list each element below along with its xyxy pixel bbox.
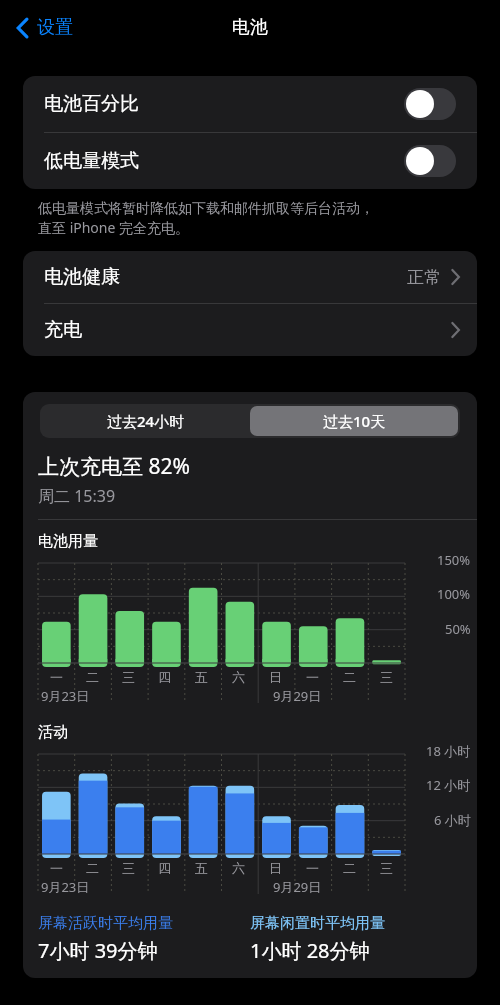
staticText: 电池健康: [44, 265, 120, 289]
staticText: 三: [122, 669, 135, 685]
staticText: 电池用量: [38, 532, 98, 551]
staticText: 五: [195, 669, 208, 685]
staticText: 7小时 39分钟: [38, 937, 158, 964]
staticText: 二: [343, 669, 356, 685]
staticText: 过去24小时: [107, 411, 185, 431]
staticText: 1小时 28分钟: [250, 937, 370, 964]
staticText: 一: [306, 669, 319, 685]
staticText: 一: [50, 669, 63, 685]
staticText: 日: [269, 860, 282, 876]
staticText: 周二 15:39: [38, 485, 116, 507]
staticText: 活动: [38, 723, 68, 742]
staticText: 9月23日: [41, 878, 90, 896]
staticText: 上次充电至 82%: [38, 452, 190, 481]
staticText: 四: [158, 669, 171, 685]
staticText: 18 小时: [426, 742, 471, 760]
staticText: 150%: [437, 551, 471, 569]
button[interactable]: 低电量模式: [23, 133, 477, 189]
staticText: 屏幕闲置时平均用量: [250, 914, 385, 933]
staticText: 五: [195, 860, 208, 876]
button[interactable]: 过去10天: [250, 406, 458, 436]
staticText: 一: [306, 860, 319, 876]
staticText: 三: [122, 860, 135, 876]
staticText: 电池: [232, 16, 268, 39]
staticText: 50%: [445, 620, 471, 638]
staticText: 电池百分比: [44, 92, 404, 116]
staticText: 六: [232, 860, 245, 876]
staticText: 直至 iPhone 完全充电。: [38, 218, 190, 237]
staticText: 12 小时: [426, 776, 471, 794]
staticText: 低电量模式: [44, 149, 404, 173]
staticText: 设置: [37, 16, 73, 39]
staticText: 一: [50, 860, 63, 876]
staticText: 过去10天: [323, 411, 386, 431]
button[interactable]: 电池百分比: [404, 88, 456, 120]
staticText: 三: [380, 669, 393, 685]
staticText: 100%: [437, 585, 471, 603]
button[interactable]: 低电量模式: [404, 145, 456, 177]
staticText: 9月29日: [273, 878, 322, 896]
staticText: 9月23日: [41, 687, 90, 705]
staticText: 正常: [407, 267, 441, 288]
staticText: 二: [86, 669, 99, 685]
button[interactable]: 电池健康: [23, 251, 477, 303]
staticText: 9月29日: [273, 687, 322, 705]
button[interactable]: 电池百分比: [23, 76, 477, 132]
button[interactable]: 过去24小时: [42, 406, 250, 436]
staticText: 三: [380, 860, 393, 876]
staticText: 六: [232, 669, 245, 685]
staticText: 屏幕活跃时平均用量: [38, 914, 173, 933]
staticText: 充电: [44, 318, 82, 342]
staticText: 二: [343, 860, 356, 876]
staticText: 日: [269, 669, 282, 685]
staticText: 6 小时: [434, 811, 471, 829]
staticText: 二: [86, 860, 99, 876]
button[interactable]: 设置: [12, 10, 77, 45]
staticText: 四: [158, 860, 171, 876]
staticText: 低电量模式将暂时降低如下载和邮件抓取等后台活动，: [38, 200, 374, 218]
button[interactable]: 充电: [23, 304, 477, 356]
